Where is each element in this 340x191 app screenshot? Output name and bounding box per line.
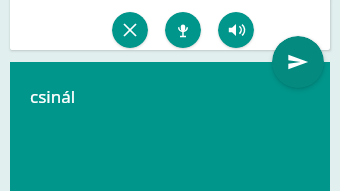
button[interactable]: Clear [112,12,148,48]
button[interactable]: csinál [10,62,330,191]
button[interactable]: Send [272,36,324,88]
button[interactable]: Listen [218,12,254,48]
button[interactable]: Voice input [165,12,201,48]
staticText: csinál [30,85,76,108]
